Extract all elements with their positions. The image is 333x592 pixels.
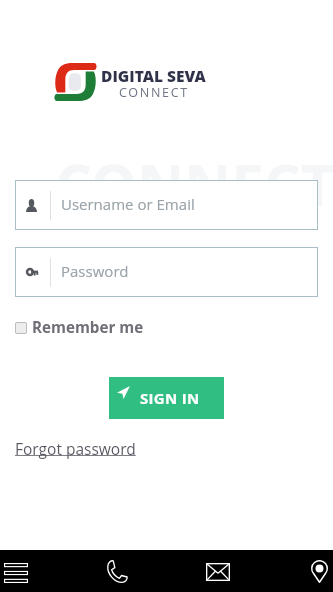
button[interactable]: SIGN IN [109,377,224,419]
button[interactable]: Location [311,560,328,583]
staticText: Remember me [32,317,144,338]
button[interactable]: Password [15,247,318,297]
button[interactable]: Call [105,560,128,583]
staticText: Password [61,261,129,281]
staticText: SIGN IN [140,388,200,408]
staticText: CONNECT [55,144,333,223]
staticText: DIGITAL SEVA [101,65,206,86]
button[interactable]: Mail [206,562,230,581]
button[interactable]: Forgot password [15,438,136,459]
button[interactable]: Username or Email [15,180,318,230]
button[interactable]: Remember me [15,317,144,338]
button[interactable]: Menu [4,562,28,583]
staticText: CONNECT [119,84,189,101]
staticText: Username or Email [61,194,195,214]
